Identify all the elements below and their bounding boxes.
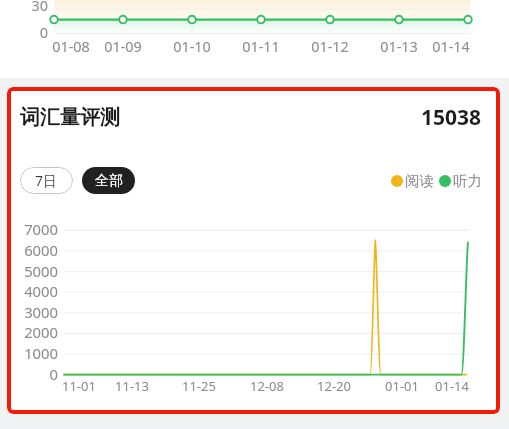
staticText: 11-01 — [54, 377, 104, 395]
staticText: 11-13 — [107, 377, 157, 395]
staticText: 6000 — [8, 240, 58, 260]
staticText: 2000 — [8, 322, 58, 342]
staticText: 1000 — [8, 343, 58, 363]
button[interactable]: 全部 — [82, 167, 135, 194]
staticText: 12-20 — [309, 377, 359, 395]
staticText: 01-14 — [426, 37, 476, 57]
staticText: 01-14 — [427, 377, 477, 395]
staticText: 7000 — [8, 219, 58, 239]
staticText: 0 — [8, 364, 58, 384]
button[interactable]: 7日 — [20, 167, 73, 194]
staticText: 7日 — [35, 171, 58, 190]
staticText: 阅读 — [405, 172, 434, 190]
staticText: 01-09 — [98, 37, 148, 57]
staticText: 01-12 — [305, 37, 355, 57]
staticText: 0 — [8, 23, 48, 43]
staticText: 11-25 — [174, 377, 224, 395]
staticText: 词汇量评测 — [20, 105, 120, 130]
staticText: 01-13 — [374, 37, 424, 57]
staticText: 30 — [8, 0, 48, 16]
staticText: 15038 — [421, 103, 482, 132]
staticText: 12-08 — [242, 377, 292, 395]
staticText: 01-10 — [167, 37, 217, 57]
staticText: 01-01 — [377, 377, 427, 395]
staticText: 01-08 — [46, 37, 96, 57]
staticText: 3000 — [8, 302, 58, 322]
staticText: 全部 — [95, 172, 123, 190]
staticText: 听力 — [453, 172, 482, 190]
staticText: 5000 — [8, 261, 58, 281]
staticText: 4000 — [8, 281, 58, 301]
staticText: 01-11 — [236, 37, 286, 57]
